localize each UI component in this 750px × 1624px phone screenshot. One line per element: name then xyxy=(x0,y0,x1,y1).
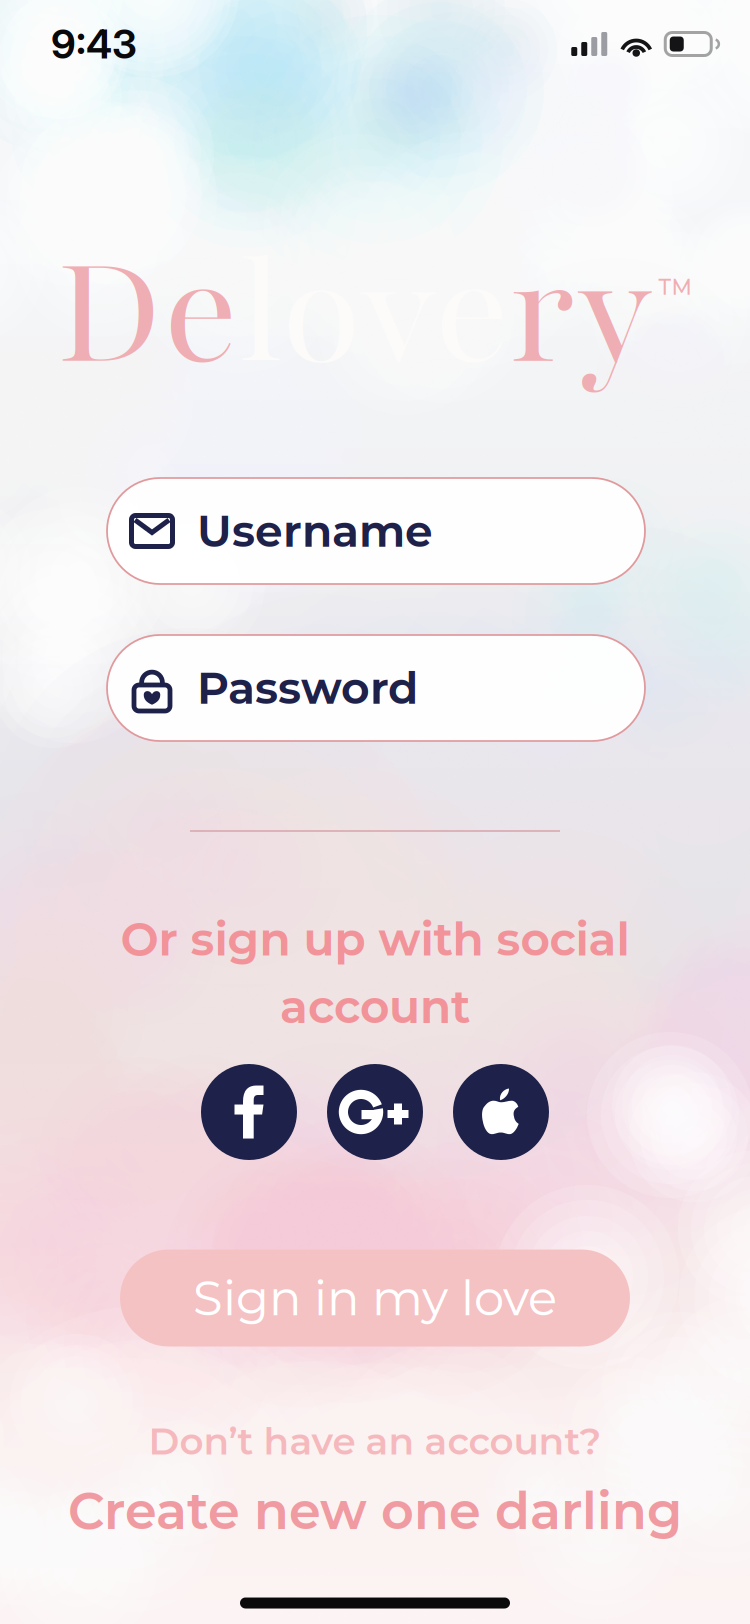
button[interactable]: Sign up with Facebook xyxy=(201,1064,297,1160)
staticText: Or sign up with social xyxy=(120,912,629,967)
button[interactable]: Password xyxy=(107,635,645,741)
staticText: Username xyxy=(197,504,433,558)
button[interactable]: Sign up with Apple xyxy=(453,1064,549,1160)
button[interactable]: Username xyxy=(107,478,645,584)
staticText: TM xyxy=(658,274,691,300)
button[interactable]: Sign in my love xyxy=(120,1249,630,1346)
button[interactable]: Sign up with Google Plus xyxy=(327,1064,423,1160)
staticText: Password xyxy=(197,661,418,715)
button[interactable]: Don’t have an account? xyxy=(68,1418,682,1542)
staticText: ry xyxy=(509,213,652,413)
staticText: Create new one darling xyxy=(68,1480,682,1542)
staticText: account xyxy=(280,979,470,1034)
staticText: Don’t have an account? xyxy=(148,1418,601,1464)
staticText: love xyxy=(238,213,509,413)
staticText: Sign in my love xyxy=(193,1269,557,1327)
staticText: 9:43 xyxy=(51,20,137,68)
staticText: De xyxy=(56,213,238,413)
